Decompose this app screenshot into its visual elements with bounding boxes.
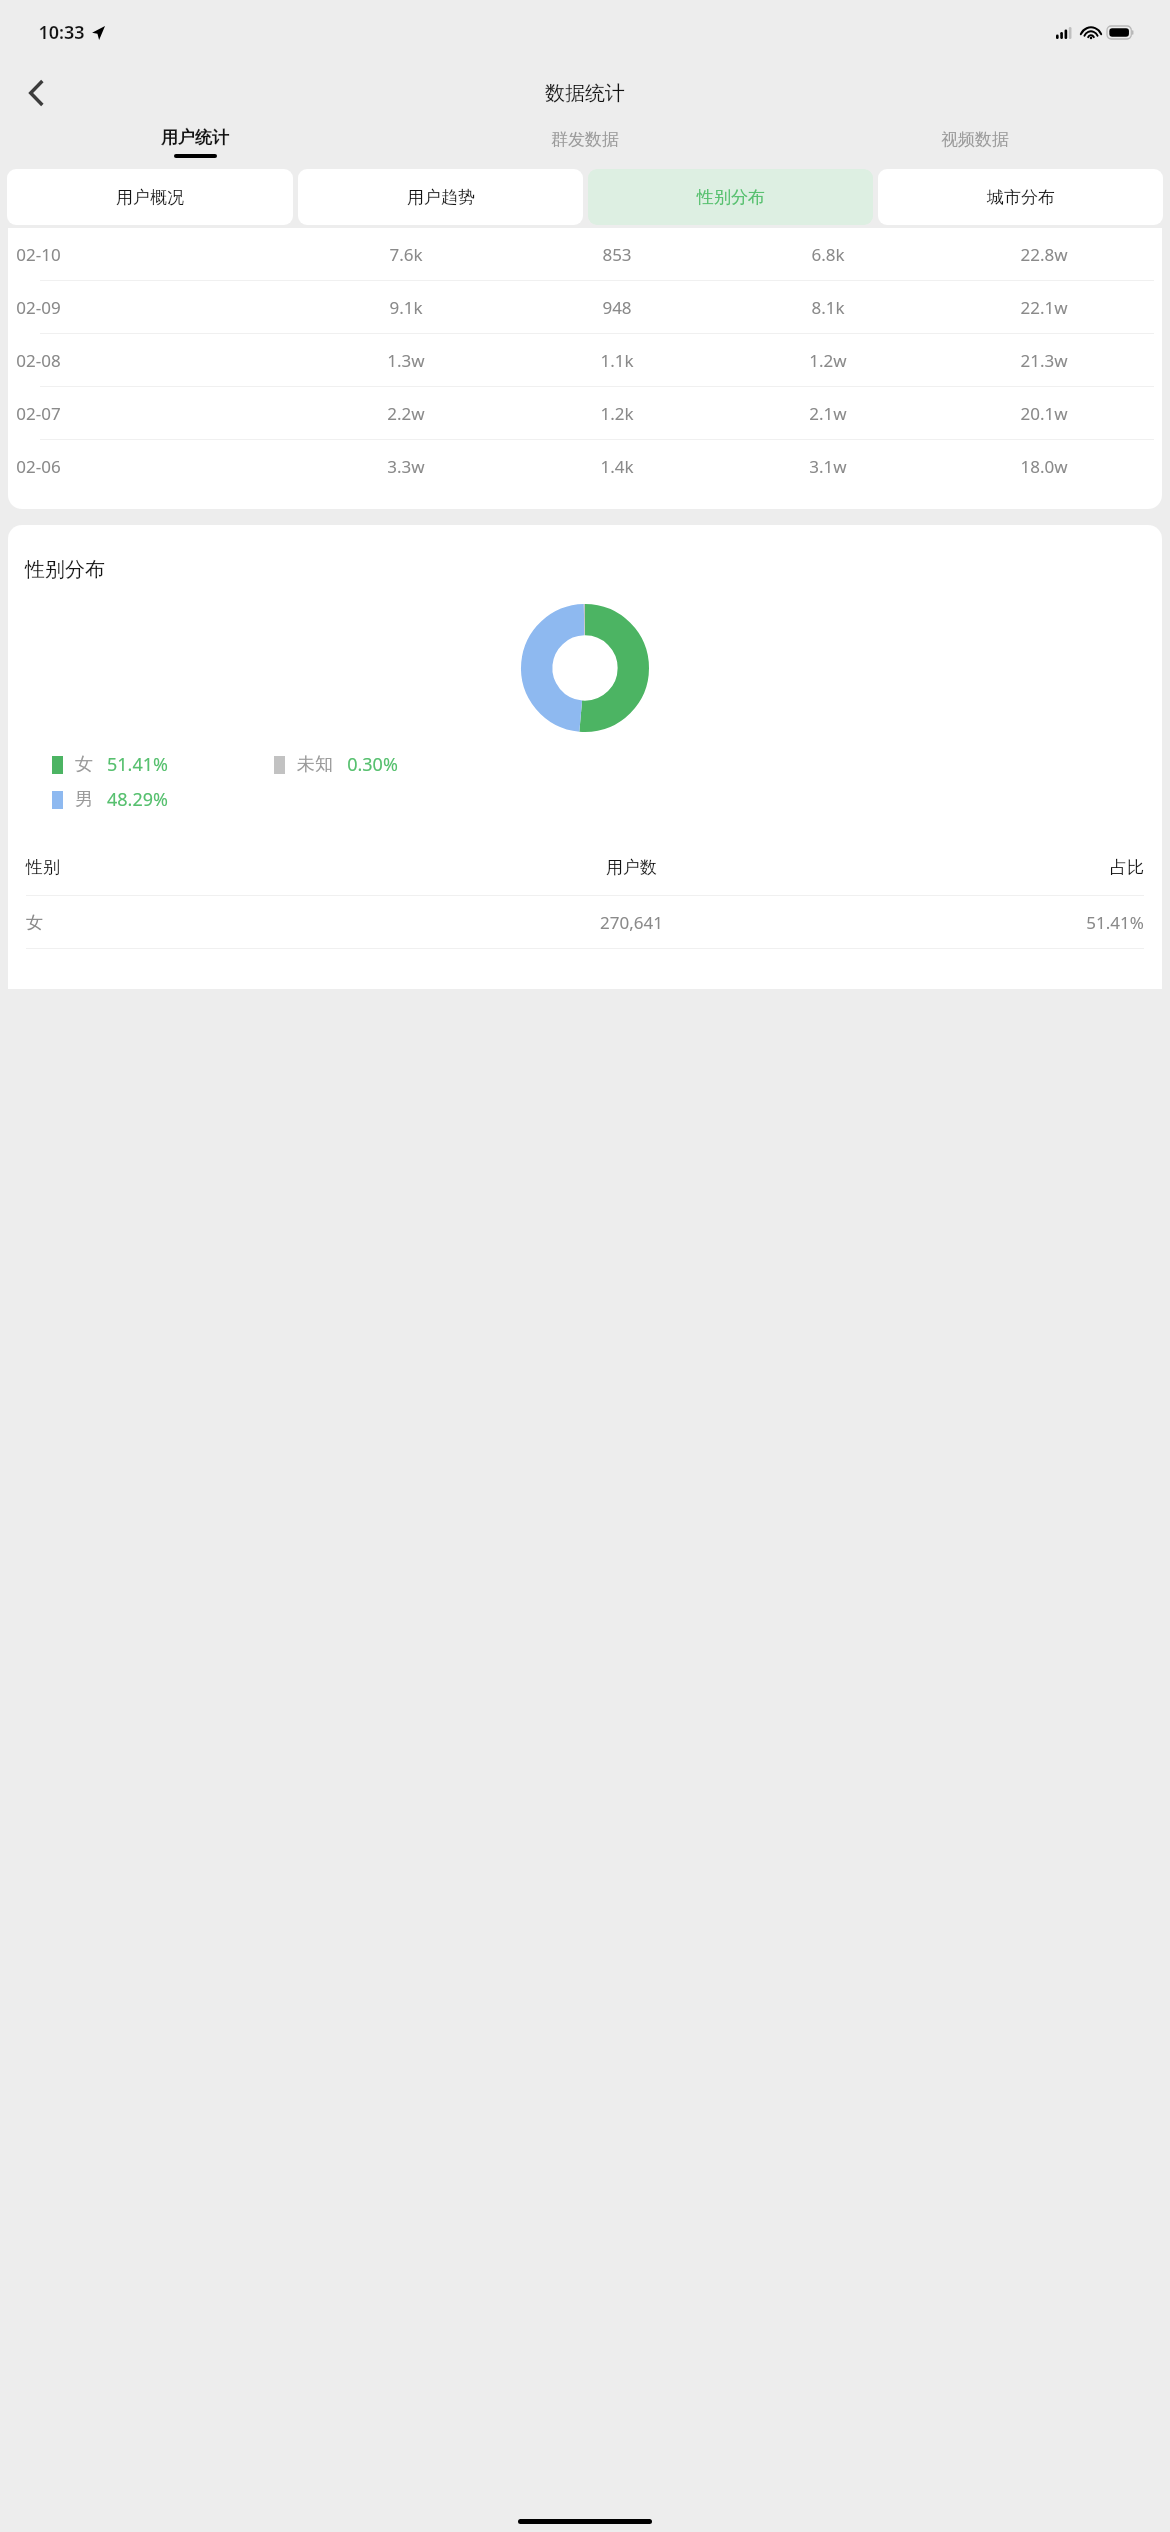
staticText: 48.29% (107, 787, 168, 812)
staticText: 51.41% (1086, 911, 1144, 934)
staticText: 20.1w (1020, 402, 1068, 425)
staticText: 2.2w (387, 402, 425, 425)
staticText: 2.1w (809, 402, 847, 425)
button[interactable]: 用户统计 (0, 122, 390, 162)
button[interactable]: 城市分布 (878, 169, 1163, 225)
button[interactable]: Back (14, 71, 58, 115)
staticText: 用户概况 (116, 187, 184, 208)
staticText: 270,641 (600, 911, 663, 934)
button[interactable]: 02-07 (16, 387, 1154, 439)
staticText: 群发数据 (551, 129, 619, 150)
staticText: 02-10 (16, 243, 61, 266)
staticText: 1.4k (600, 455, 634, 478)
button[interactable]: 群发数据 (390, 122, 780, 162)
staticText: 未知 (297, 753, 333, 776)
staticText: 02-07 (16, 402, 61, 425)
button[interactable]: 视频数据 (780, 122, 1170, 162)
staticText: 性别 (26, 857, 60, 878)
staticText: 8.1k (811, 296, 845, 319)
button[interactable]: 性别分布 (588, 169, 873, 225)
button[interactable]: 用户趋势 (298, 169, 583, 225)
staticText: 3.1w (809, 455, 847, 478)
staticText: 51.41% (107, 752, 168, 777)
staticText: 948 (602, 296, 632, 319)
staticText: 女 (26, 912, 43, 933)
staticText: 02-06 (16, 455, 61, 478)
staticText: 1.3w (387, 349, 425, 372)
staticText: 女 (75, 753, 93, 776)
staticText: 18.0w (1020, 455, 1068, 478)
staticText: 1.1k (600, 349, 634, 372)
staticText: 性别分布 (25, 557, 105, 582)
staticText: 数据统计 (545, 81, 625, 106)
button[interactable]: 用户概况 (7, 169, 293, 225)
staticText: 用户趋势 (407, 187, 475, 208)
staticText: 3.3w (387, 455, 425, 478)
button[interactable]: 02-09 (16, 281, 1154, 333)
button[interactable]: 女 (52, 752, 168, 777)
staticText: 视频数据 (941, 129, 1009, 150)
staticText: 用户数 (606, 857, 657, 878)
staticText: 22.8w (1020, 243, 1068, 266)
staticText: 男 (75, 788, 93, 811)
staticText: 853 (602, 243, 632, 266)
staticText: 1.2w (809, 349, 847, 372)
staticText: 0.30% (347, 752, 398, 777)
staticText: 02-09 (16, 296, 61, 319)
staticText: 6.8k (811, 243, 845, 266)
staticText: 10:33 (38, 20, 85, 45)
staticText: 1.2k (600, 402, 634, 425)
staticText: 用户统计 (161, 127, 229, 148)
button[interactable]: 02-08 (16, 334, 1154, 386)
staticText: 7.6k (389, 243, 423, 266)
staticText: 22.1w (1020, 296, 1068, 319)
staticText: 城市分布 (987, 187, 1055, 208)
button[interactable]: 男 (52, 787, 168, 812)
button[interactable]: 女 (26, 896, 1144, 948)
staticText: 02-08 (16, 349, 61, 372)
button[interactable]: 02-10 (16, 228, 1154, 280)
button[interactable]: 02-06 (16, 440, 1154, 492)
staticText: 9.1k (389, 296, 423, 319)
staticText: 性别分布 (697, 187, 765, 208)
staticText: 占比 (1110, 857, 1144, 878)
staticText: 21.3w (1020, 349, 1068, 372)
button[interactable]: 未知 (274, 752, 398, 777)
